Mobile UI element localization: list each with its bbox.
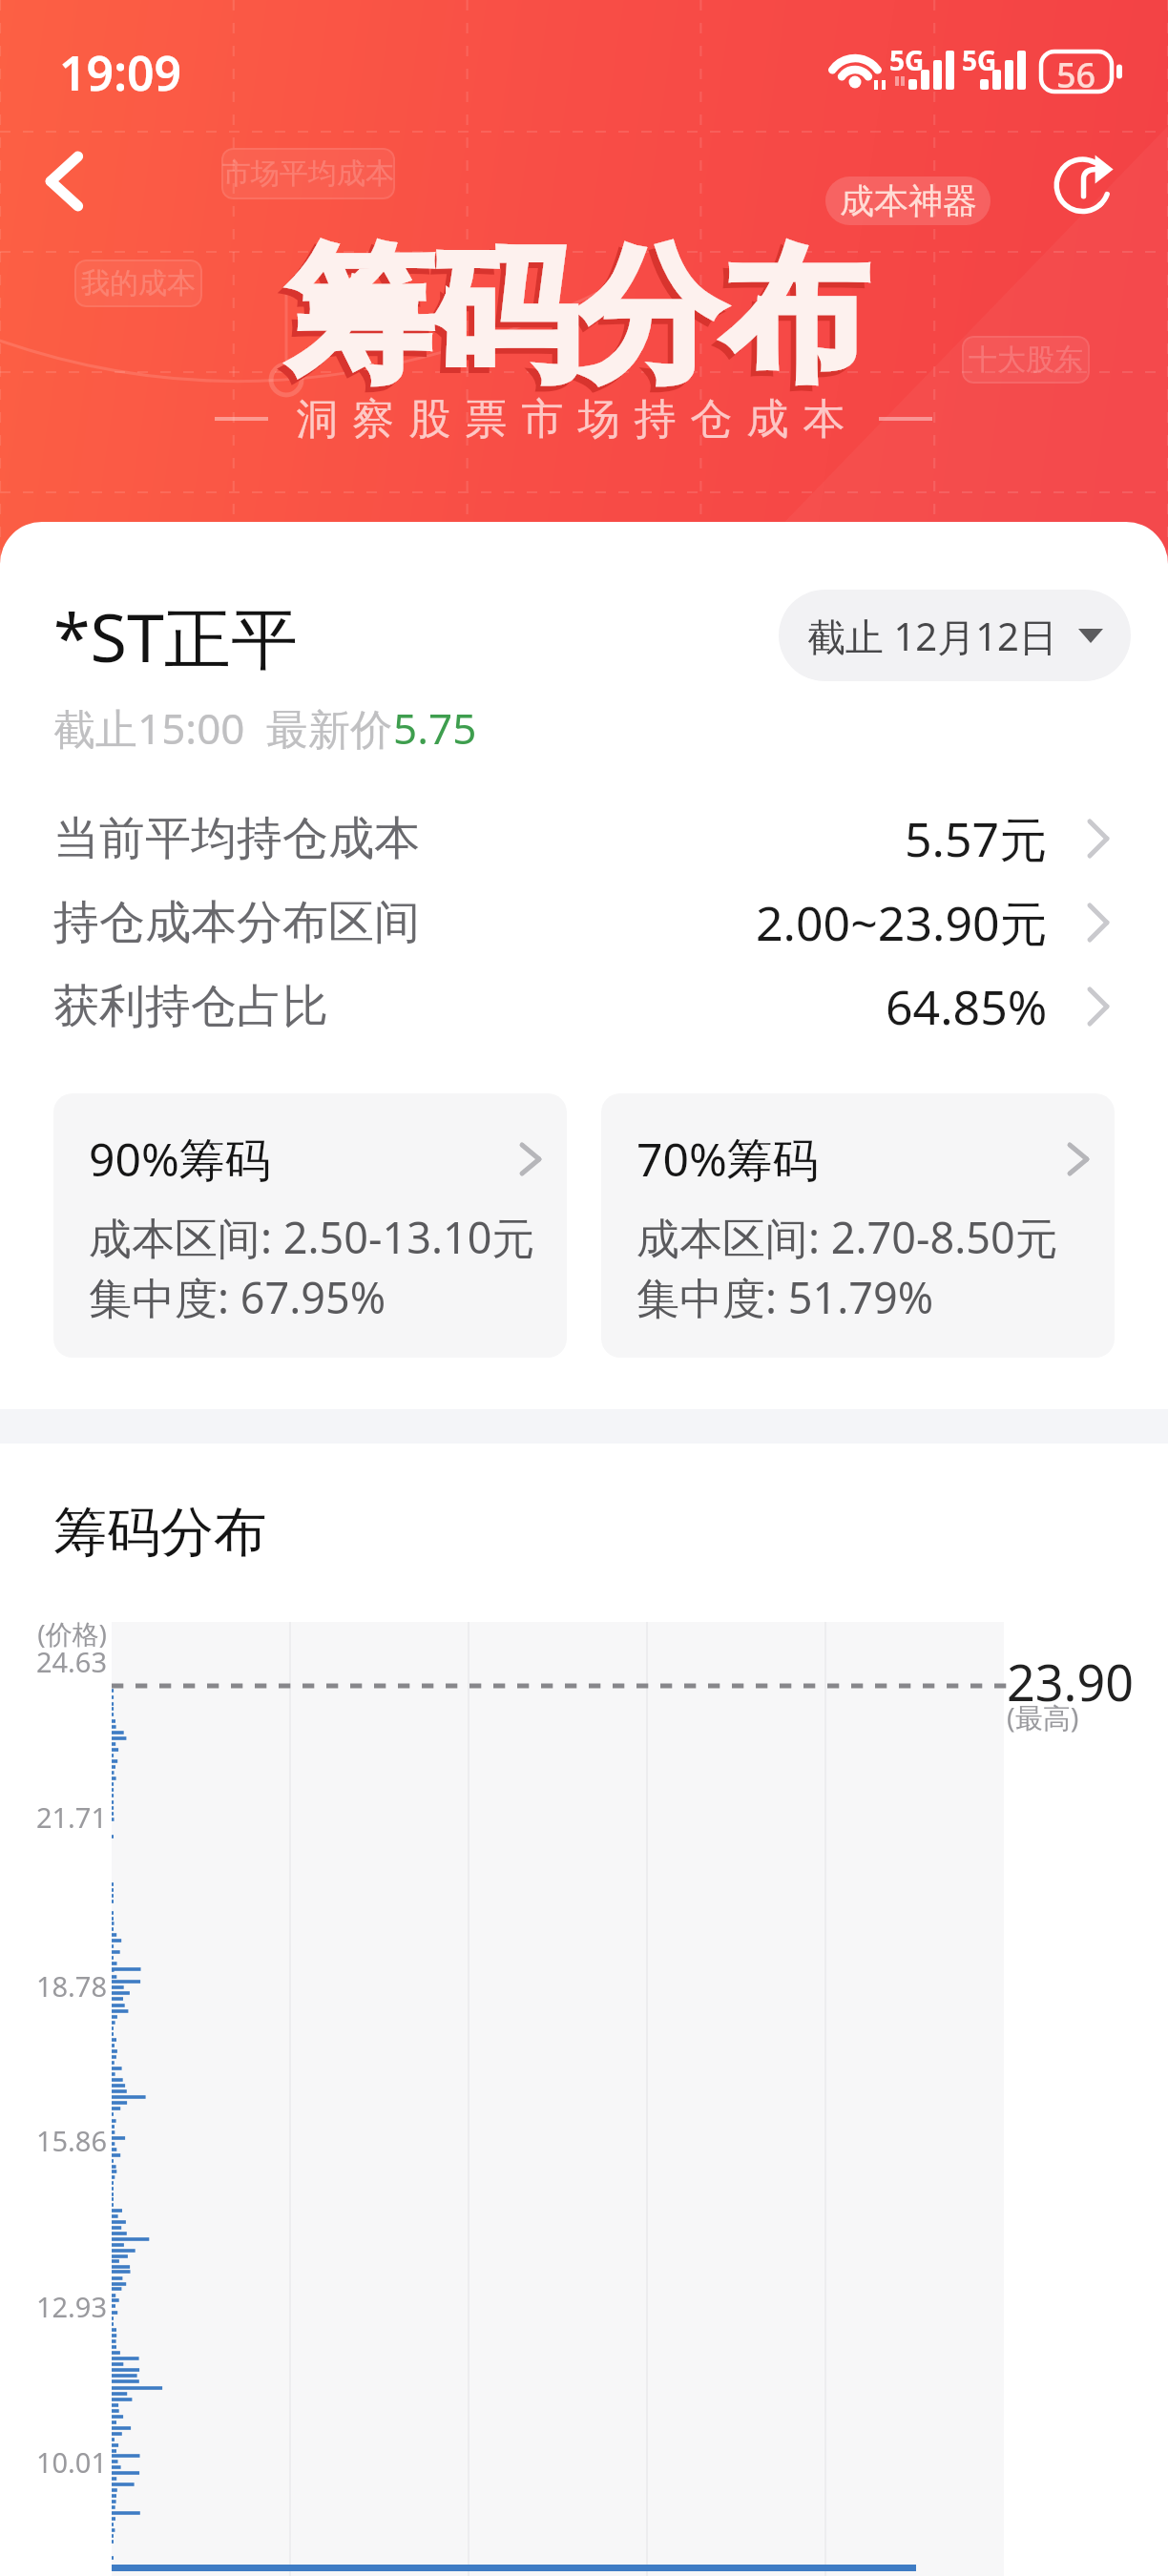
staticText: 90%筹码: [89, 1128, 271, 1191]
staticText: 持仓成本分布区间: [53, 894, 420, 951]
button[interactable]: Back: [13, 130, 116, 233]
staticText: 18.78: [0, 1967, 107, 2005]
staticText: 70%筹码: [636, 1128, 819, 1191]
staticText: 64.85%: [886, 974, 1048, 1039]
staticText: 56: [1056, 52, 1096, 92]
staticText: 筹码分布: [282, 232, 862, 414]
staticText: 十大股东: [969, 342, 1083, 378]
staticText: 成本区间: 2.70-8.50元: [636, 1208, 1058, 1266]
staticText: 成本区间: 2.50-13.10元: [89, 1208, 535, 1266]
staticText: 筹码分布: [287, 226, 867, 408]
button[interactable]: 当前平均持仓成本: [0, 797, 1168, 881]
staticText: 集中度: 51.79%: [636, 1268, 934, 1326]
staticText: 集中度: 67.95%: [89, 1268, 386, 1326]
button[interactable]: 持仓成本分布区间: [0, 881, 1168, 965]
staticText: 当前平均持仓成本: [53, 810, 420, 867]
button[interactable]: 获利持仓占比: [0, 965, 1168, 1049]
staticText: 23.90: [1007, 1648, 1134, 1715]
staticText: 5G: [889, 42, 925, 78]
staticText: 洞察股票市场持仓成本: [289, 393, 852, 446]
staticText: 5.57元: [905, 806, 1048, 871]
staticText: 21.71: [0, 1798, 107, 1836]
staticText: 获利持仓占比: [53, 978, 328, 1035]
staticText: 5G: [962, 42, 997, 78]
staticText: 24.63: [0, 1643, 107, 1680]
staticText: 12.93: [0, 2288, 107, 2325]
button[interactable]: Refresh: [1039, 138, 1131, 226]
button[interactable]: 成本神器: [825, 177, 991, 225]
staticText: 筹码分布: [53, 1499, 267, 1567]
staticText: 2.00~23.90元: [756, 890, 1048, 955]
staticText: 截止 12月12日: [807, 610, 1057, 662]
staticText: 15.86: [0, 2122, 107, 2159]
staticText: 市场平均成本: [222, 156, 394, 192]
staticText: *ST正平: [53, 591, 298, 682]
staticText: 我的成本: [81, 265, 196, 301]
staticText: 10.01: [0, 2443, 107, 2481]
staticText: 成本神器: [840, 179, 977, 222]
staticText: 截止15:00 最新价: [53, 699, 393, 757]
button[interactable]: 截止 12月12日: [779, 590, 1131, 681]
staticText: 5.75: [393, 699, 477, 757]
staticText: (最高): [1007, 1698, 1079, 1736]
button[interactable]: 70%筹码: [601, 1093, 1115, 1358]
button[interactable]: 90%筹码: [53, 1093, 567, 1358]
staticText: (价格): [0, 1615, 107, 1652]
staticText: 19:09: [59, 40, 182, 105]
